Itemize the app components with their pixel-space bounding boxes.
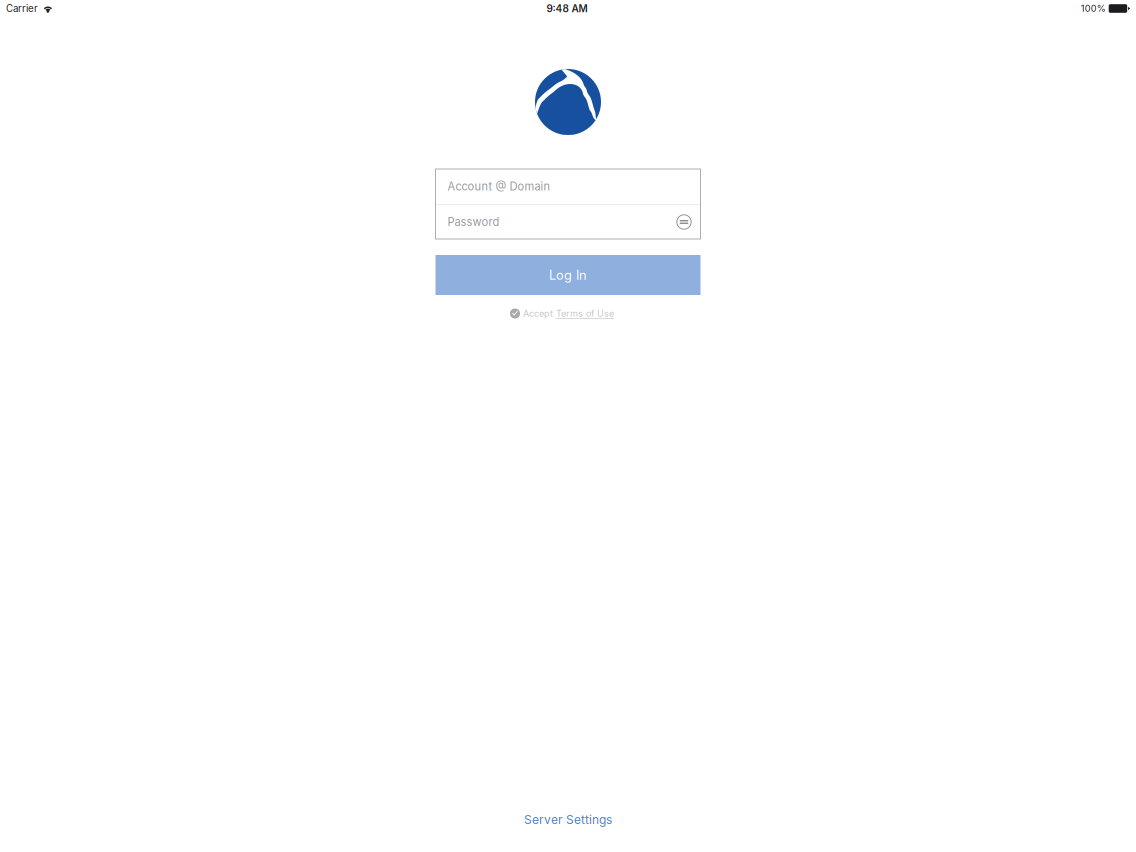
staticText: Carrier [6, 3, 38, 14]
staticText: 100% [1081, 3, 1106, 14]
staticText: Log In [549, 267, 587, 283]
staticText: Server Settings [524, 812, 612, 827]
staticText: Account @ Domain [447, 180, 550, 193]
staticText: Accept [523, 308, 556, 319]
staticText: Password [447, 215, 499, 229]
staticText: Terms of Use [556, 308, 614, 319]
button[interactable]: Log In [435, 255, 700, 295]
staticText: 9:48 AM [547, 2, 588, 15]
button[interactable]: Accept [510, 308, 626, 319]
button[interactable]: Server Settings [524, 812, 612, 827]
